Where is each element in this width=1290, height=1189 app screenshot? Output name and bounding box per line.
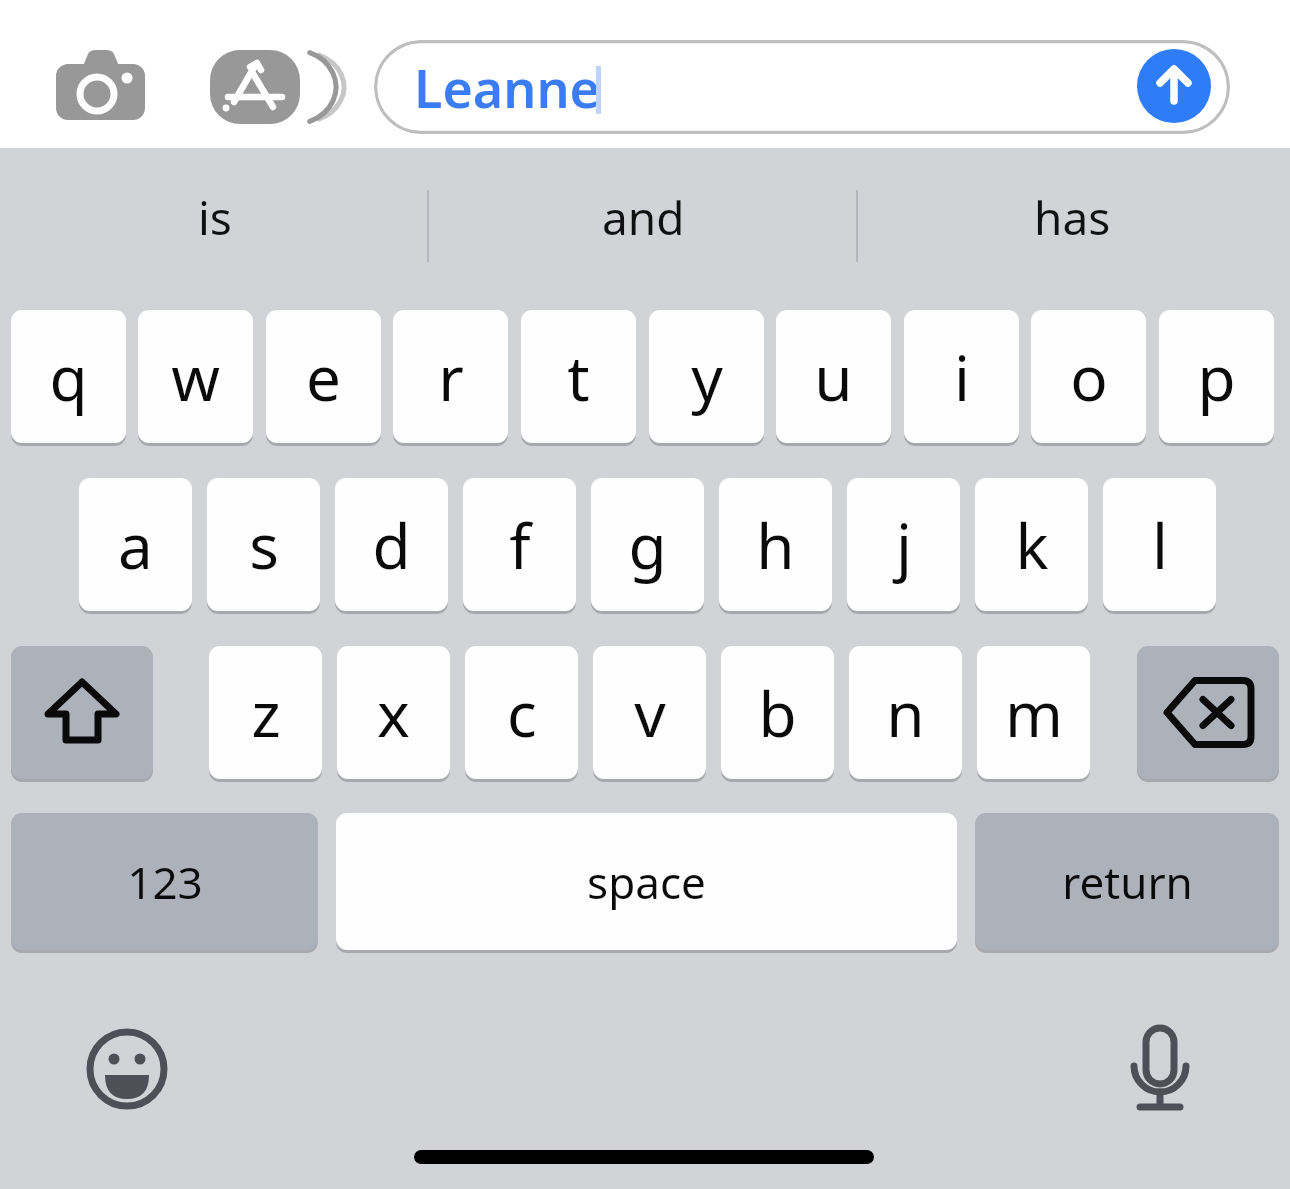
- button[interactable]: space: [336, 813, 957, 950]
- button[interactable]: u: [776, 310, 891, 443]
- button[interactable]: z: [209, 646, 322, 779]
- button[interactable]: a: [79, 478, 192, 611]
- staticText: is: [198, 186, 232, 249]
- button[interactable]: d: [335, 478, 448, 611]
- button[interactable]: q: [11, 310, 126, 443]
- staticText: y: [691, 335, 723, 419]
- staticText: v: [634, 671, 666, 755]
- staticText: d: [372, 503, 411, 587]
- button[interactable]: return: [975, 813, 1279, 950]
- button[interactable]: Backspace: [1137, 646, 1279, 779]
- button[interactable]: g: [591, 478, 704, 611]
- staticText: h: [756, 503, 795, 587]
- staticText: g: [628, 503, 667, 587]
- button[interactable]: Shift: [11, 646, 153, 779]
- button[interactable]: s: [207, 478, 320, 611]
- staticText: c: [507, 671, 537, 755]
- button[interactable]: and: [429, 150, 858, 285]
- button[interactable]: r: [393, 310, 508, 443]
- staticText: f: [509, 503, 531, 587]
- staticText: k: [1015, 503, 1049, 587]
- button[interactable]: f: [463, 478, 576, 611]
- staticText: w: [171, 335, 220, 419]
- button[interactable]: l: [1103, 478, 1216, 611]
- staticText: q: [49, 335, 88, 419]
- staticText: and: [602, 186, 685, 249]
- button[interactable]: e: [266, 310, 381, 443]
- button[interactable]: is: [0, 150, 429, 285]
- button[interactable]: Emoji: [79, 1021, 175, 1117]
- button[interactable]: 123: [11, 813, 318, 950]
- staticText: l: [1152, 503, 1168, 587]
- button[interactable]: t: [521, 310, 636, 443]
- button[interactable]: n: [849, 646, 962, 779]
- staticText: r: [438, 335, 464, 419]
- staticText: z: [251, 671, 281, 755]
- staticText: u: [814, 335, 853, 419]
- button[interactable]: p: [1159, 310, 1274, 443]
- staticText: e: [306, 335, 341, 419]
- staticText: has: [1034, 186, 1111, 249]
- staticText: 123: [127, 852, 203, 912]
- staticText: space: [587, 852, 706, 912]
- button[interactable]: App Store: [200, 40, 325, 135]
- button[interactable]: Dictation: [1112, 1018, 1208, 1118]
- staticText: return: [1062, 852, 1193, 912]
- staticText: t: [567, 335, 590, 419]
- button[interactable]: k: [975, 478, 1088, 611]
- button[interactable]: o: [1031, 310, 1146, 443]
- button[interactable]: c: [465, 646, 578, 779]
- button[interactable]: h: [719, 478, 832, 611]
- button[interactable]: has: [858, 150, 1287, 285]
- staticText: Leanne: [414, 52, 601, 123]
- button[interactable]: w: [138, 310, 253, 443]
- button[interactable]: b: [721, 646, 834, 779]
- staticText: m: [1005, 671, 1063, 755]
- staticText: a: [118, 503, 153, 587]
- button[interactable]: j: [847, 478, 960, 611]
- staticText: i: [954, 335, 970, 419]
- button[interactable]: v: [593, 646, 706, 779]
- staticText: o: [1070, 335, 1108, 419]
- staticText: x: [377, 671, 410, 755]
- button[interactable]: x: [337, 646, 450, 779]
- button[interactable]: i: [904, 310, 1019, 443]
- staticText: s: [249, 503, 279, 587]
- staticText: p: [1197, 335, 1236, 419]
- button[interactable]: m: [977, 646, 1090, 779]
- staticText: n: [886, 671, 925, 755]
- button[interactable]: Send: [1137, 49, 1211, 123]
- button[interactable]: Camera: [40, 40, 160, 135]
- button[interactable]: y: [649, 310, 764, 443]
- staticText: j: [896, 503, 912, 587]
- staticText: b: [758, 671, 797, 755]
- button[interactable]: Leanne: [374, 40, 1230, 134]
